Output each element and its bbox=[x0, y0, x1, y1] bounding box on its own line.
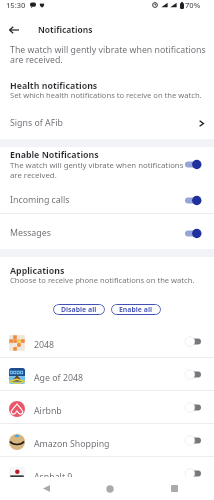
staticText: are received. bbox=[10, 54, 63, 66]
staticText: The watch will gently vibrate when notif… bbox=[10, 160, 184, 171]
button[interactable]: Age of 2048 bbox=[0, 358, 214, 391]
button[interactable]: Enable all bbox=[111, 304, 161, 315]
staticText: Airbnb bbox=[34, 405, 185, 417]
staticText: Set which health notifications to receiv… bbox=[10, 90, 202, 100]
other: Open Signs of AFib bbox=[199, 119, 204, 128]
staticText: Choose to receive phone notifications on… bbox=[10, 275, 195, 285]
button[interactable]: Messages bbox=[0, 219, 214, 247]
staticText: 2048 bbox=[34, 339, 185, 351]
staticText: Applications bbox=[10, 265, 65, 277]
staticText: Messages bbox=[10, 227, 185, 239]
staticText: Amazon Shopping bbox=[34, 438, 185, 450]
staticText: Age of 2048 bbox=[34, 372, 185, 384]
button[interactable]: Asphalt 9 bbox=[0, 457, 214, 490]
button[interactable]: Home bbox=[96, 477, 124, 500]
staticText: 70% bbox=[185, 0, 201, 10]
button[interactable]: Back bbox=[32, 477, 60, 500]
staticText: Notifications bbox=[38, 24, 93, 35]
button[interactable]: Amazon Shopping bbox=[0, 424, 214, 457]
button[interactable]: Signs of AFib bbox=[0, 111, 214, 135]
staticText: Enable Notifications bbox=[10, 149, 99, 161]
staticText: Disable all bbox=[61, 305, 97, 314]
staticText: Incoming calls bbox=[10, 194, 185, 206]
button[interactable]: Recents bbox=[160, 477, 188, 500]
staticText: The watch will gently vibrate when notif… bbox=[10, 44, 206, 56]
staticText: 15:30 bbox=[6, 0, 26, 10]
staticText: are received. bbox=[10, 170, 57, 181]
button[interactable]: Airbnb bbox=[0, 391, 214, 424]
button[interactable]: Back bbox=[0, 18, 28, 41]
button[interactable]: Disable all bbox=[53, 304, 105, 315]
staticText: Health notifications bbox=[10, 80, 98, 92]
staticText: Signs of AFib bbox=[10, 117, 199, 129]
staticText: Enable all bbox=[119, 305, 153, 314]
button[interactable]: Incoming calls bbox=[0, 186, 214, 214]
button[interactable]: 2048 bbox=[0, 325, 214, 358]
button[interactable]: Enable Notifications bbox=[0, 147, 214, 185]
staticText: Asphalt 9 bbox=[34, 471, 185, 483]
